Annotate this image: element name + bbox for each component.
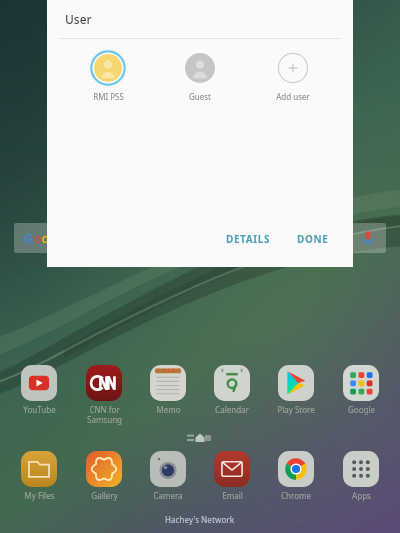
staticText: Email [222, 490, 243, 501]
staticText: Add user [276, 91, 310, 102]
button[interactable]: Google [330, 363, 392, 417]
button[interactable]: Calendar [201, 363, 263, 417]
staticText: DETAILS [226, 232, 271, 246]
button[interactable]: Gallery [73, 449, 135, 503]
button[interactable]: YouTube [8, 363, 70, 417]
button[interactable]: DETAILS [220, 226, 277, 252]
button[interactable]: Google [14, 223, 386, 253]
staticText: Gallery [91, 490, 118, 501]
staticText: Play Store [277, 404, 315, 415]
button[interactable]: Email [201, 449, 263, 503]
button[interactable]: Camera [137, 449, 199, 503]
button[interactable]: My Files [8, 449, 70, 503]
staticText: YouTube [23, 404, 56, 415]
button[interactable]: CNN for Samsung [73, 363, 135, 427]
staticText: Memo [156, 404, 181, 415]
button[interactable]: Guest [158, 49, 242, 104]
staticText: My Files [24, 490, 55, 501]
staticText: Camera [153, 490, 183, 501]
button[interactable]: Voice search [356, 226, 380, 250]
staticText: Calendar [215, 404, 249, 415]
button[interactable]: Memo [137, 363, 199, 417]
staticText: Chrome [281, 490, 311, 501]
staticText: DONE [297, 232, 329, 246]
button[interactable]: Apps [330, 449, 392, 503]
staticText: Google [24, 229, 69, 247]
button[interactable]: DONE [291, 226, 335, 252]
button[interactable]: Chrome [265, 449, 327, 503]
staticText: Google [348, 404, 375, 415]
staticText: RMI PSS [93, 91, 124, 102]
button[interactable]: RMI PSS [66, 49, 150, 104]
button[interactable]: Play Store [265, 363, 327, 417]
staticText: Hachey's Network [165, 514, 235, 525]
button[interactable]: Add user [251, 49, 335, 104]
staticText: CNN for Samsung [87, 404, 122, 425]
staticText: Guest [189, 91, 211, 102]
staticText: Apps [352, 490, 371, 501]
staticText: User [65, 11, 92, 27]
